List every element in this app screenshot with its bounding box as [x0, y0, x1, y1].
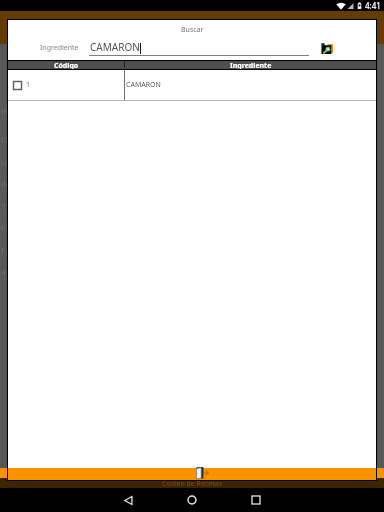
staticText: Ingrediente: [230, 61, 272, 69]
button[interactable]: 1: [8, 70, 376, 100]
staticText: Código: [54, 61, 79, 69]
button[interactable]: Salir: [196, 467, 208, 479]
staticText: Costos: [1, 136, 8, 146]
staticText: Buscar: [181, 25, 204, 35]
staticText: Proveedor: [1, 180, 8, 190]
button[interactable]: Back: [96, 488, 160, 512]
staticText: Admin: [1, 268, 8, 278]
staticText: CAMARON: [126, 80, 161, 90]
staticText: CAMARON: [90, 40, 140, 54]
staticText: Ingrediente: [40, 43, 79, 53]
staticText: Costeo de Recetas: [162, 479, 223, 489]
staticText: Fecha: [1, 224, 8, 234]
button[interactable]: Home: [160, 488, 224, 512]
staticText: Usuarios: [1, 158, 8, 168]
staticText: 1: [26, 80, 31, 90]
staticText: Fecha: [1, 246, 8, 256]
button[interactable]: Buscar: [321, 43, 333, 54]
staticText: Ingredientes: [1, 107, 8, 117]
staticText: Todos: [1, 202, 8, 212]
staticText: 4:41: [365, 0, 381, 11]
button[interactable]: Recent apps: [224, 488, 288, 512]
